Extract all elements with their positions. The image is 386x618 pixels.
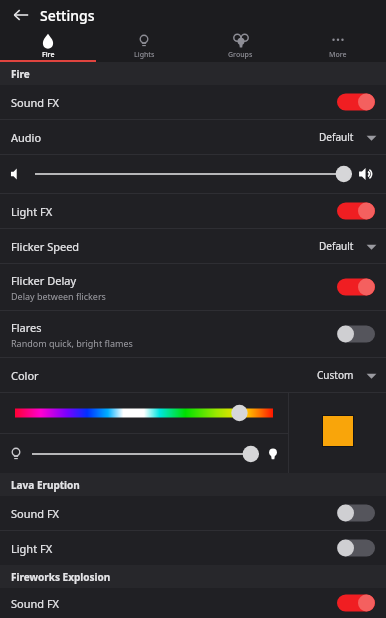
staticText: Audio (11, 130, 319, 145)
button[interactable] (35, 164, 352, 184)
staticText: Lights (134, 50, 155, 60)
staticText: Random quick, bright flames (11, 337, 133, 349)
staticText: Lava Eruption (11, 478, 80, 492)
staticText: More (329, 50, 347, 60)
button[interactable]: Flares (0, 311, 386, 357)
button[interactable]: Fire (0, 30, 96, 62)
button[interactable] (32, 444, 259, 464)
button[interactable]: Sound FX (0, 496, 386, 530)
staticText: Light FX (11, 204, 53, 219)
button[interactable]: Groups (192, 30, 289, 62)
button[interactable]: Light FX (0, 531, 386, 565)
staticText: Color (11, 368, 317, 383)
button[interactable] (15, 403, 273, 423)
staticText: Delay between flickers (11, 290, 106, 302)
button[interactable]: Sound FX (0, 588, 386, 618)
button[interactable]: Sound FX (0, 85, 386, 119)
button[interactable]: More (289, 30, 386, 62)
button[interactable]: Lights (96, 30, 192, 62)
staticText: Sound FX (11, 506, 60, 521)
staticText: Settings (40, 6, 95, 25)
staticText: Fire (42, 50, 55, 60)
staticText: Flicker Speed (11, 239, 319, 254)
staticText: Sound FX (11, 95, 60, 110)
button[interactable]: Audio (0, 120, 386, 154)
staticText: Sound FX (11, 596, 60, 611)
button[interactable]: Back (10, 4, 32, 26)
staticText: Flicker Delay (11, 273, 76, 288)
button[interactable]: Flicker Delay (0, 264, 386, 310)
staticText: Default (319, 239, 354, 253)
staticText: Custom (317, 368, 354, 382)
staticText: Groups (228, 50, 253, 60)
button[interactable]: Light FX (0, 194, 386, 228)
button[interactable]: Flicker Speed (0, 229, 386, 263)
staticText: Fireworks Explosion (11, 570, 111, 584)
staticText: Flares (11, 320, 42, 335)
staticText: Light FX (11, 541, 53, 556)
button[interactable]: Color (0, 358, 386, 392)
staticText: Fire (11, 67, 30, 81)
staticText: Default (319, 130, 354, 144)
